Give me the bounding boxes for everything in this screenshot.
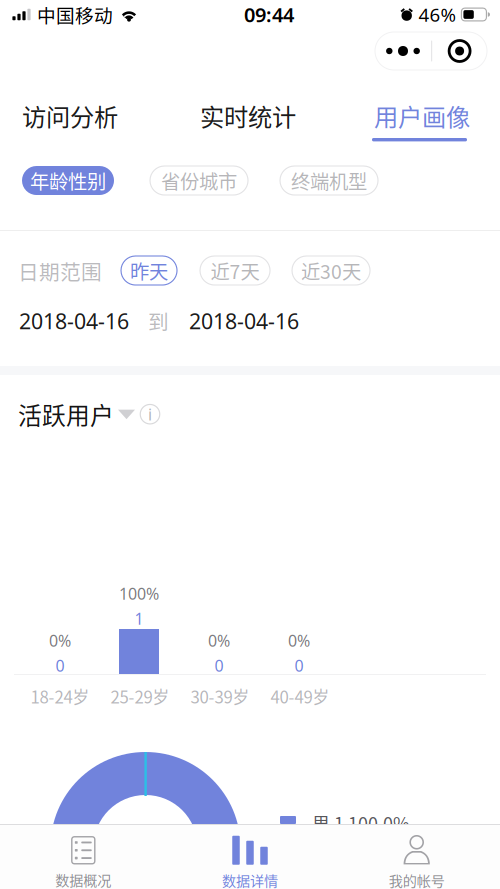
staticText: 用户画像 — [374, 98, 470, 133]
staticText: 25-29岁 — [110, 684, 169, 708]
staticText: 终端机型 — [291, 166, 367, 194]
button[interactable]: 近30天 — [292, 256, 370, 285]
staticText: 我的帐号 — [389, 870, 445, 889]
staticText: 0 — [55, 655, 64, 676]
button[interactable]: 用户画像 — [324, 96, 500, 144]
staticText: 30-39岁 — [190, 684, 249, 708]
staticText: 18-24岁 — [30, 684, 89, 708]
button[interactable]: 省份城市 — [150, 166, 248, 195]
button[interactable]: 实时统计 — [156, 96, 324, 144]
staticText: 省份城市 — [161, 166, 237, 194]
staticText: 0 — [214, 655, 223, 676]
button[interactable]: Close mini program — [432, 32, 487, 70]
staticText: 日期范围 — [18, 256, 102, 286]
staticText: 昨天 — [130, 256, 168, 284]
button[interactable]: 近7天 — [200, 256, 270, 285]
staticText: 2018-04-16 — [189, 307, 299, 335]
staticText: 近7天 — [210, 256, 259, 284]
staticText: 年龄性别 — [30, 166, 106, 194]
staticText: 到 — [148, 306, 169, 336]
staticText: 0% — [49, 630, 71, 651]
staticText: 实时统计 — [200, 98, 296, 133]
staticText: 2018-04-16 — [19, 307, 129, 335]
staticText: 46% — [418, 2, 456, 27]
staticText: 1 — [134, 608, 143, 629]
staticText: i — [148, 404, 152, 425]
staticText: 数据概况 — [55, 869, 111, 889]
button[interactable]: 数据概况 — [0, 824, 167, 889]
button[interactable]: 访问分析 — [0, 96, 156, 144]
staticText: 0 — [294, 655, 303, 676]
staticText: 男 1 100.0% — [312, 810, 410, 836]
button[interactable]: 数据详情 — [167, 824, 333, 889]
button[interactable]: 活跃用户 — [18, 392, 135, 436]
button[interactable]: 我的帐号 — [333, 824, 500, 889]
staticText: 近30天 — [301, 256, 361, 284]
staticText: 09:44 — [244, 1, 294, 28]
button[interactable]: 终端机型 — [280, 166, 378, 195]
staticText: 数据详情 — [222, 870, 278, 889]
staticText: 中国移动 — [37, 1, 113, 28]
staticText: 0% — [288, 630, 310, 651]
staticText: 活跃用户 — [18, 397, 114, 431]
button[interactable]: More options — [375, 32, 431, 70]
staticText: 40-49岁 — [270, 684, 329, 708]
button[interactable]: 年龄性别 — [22, 166, 114, 195]
button[interactable]: 昨天 — [121, 256, 177, 285]
button[interactable]: Info about active users — [135, 399, 165, 429]
staticText: 访问分析 — [22, 98, 118, 133]
staticText: 0% — [208, 630, 230, 651]
staticText: 100% — [119, 583, 159, 604]
